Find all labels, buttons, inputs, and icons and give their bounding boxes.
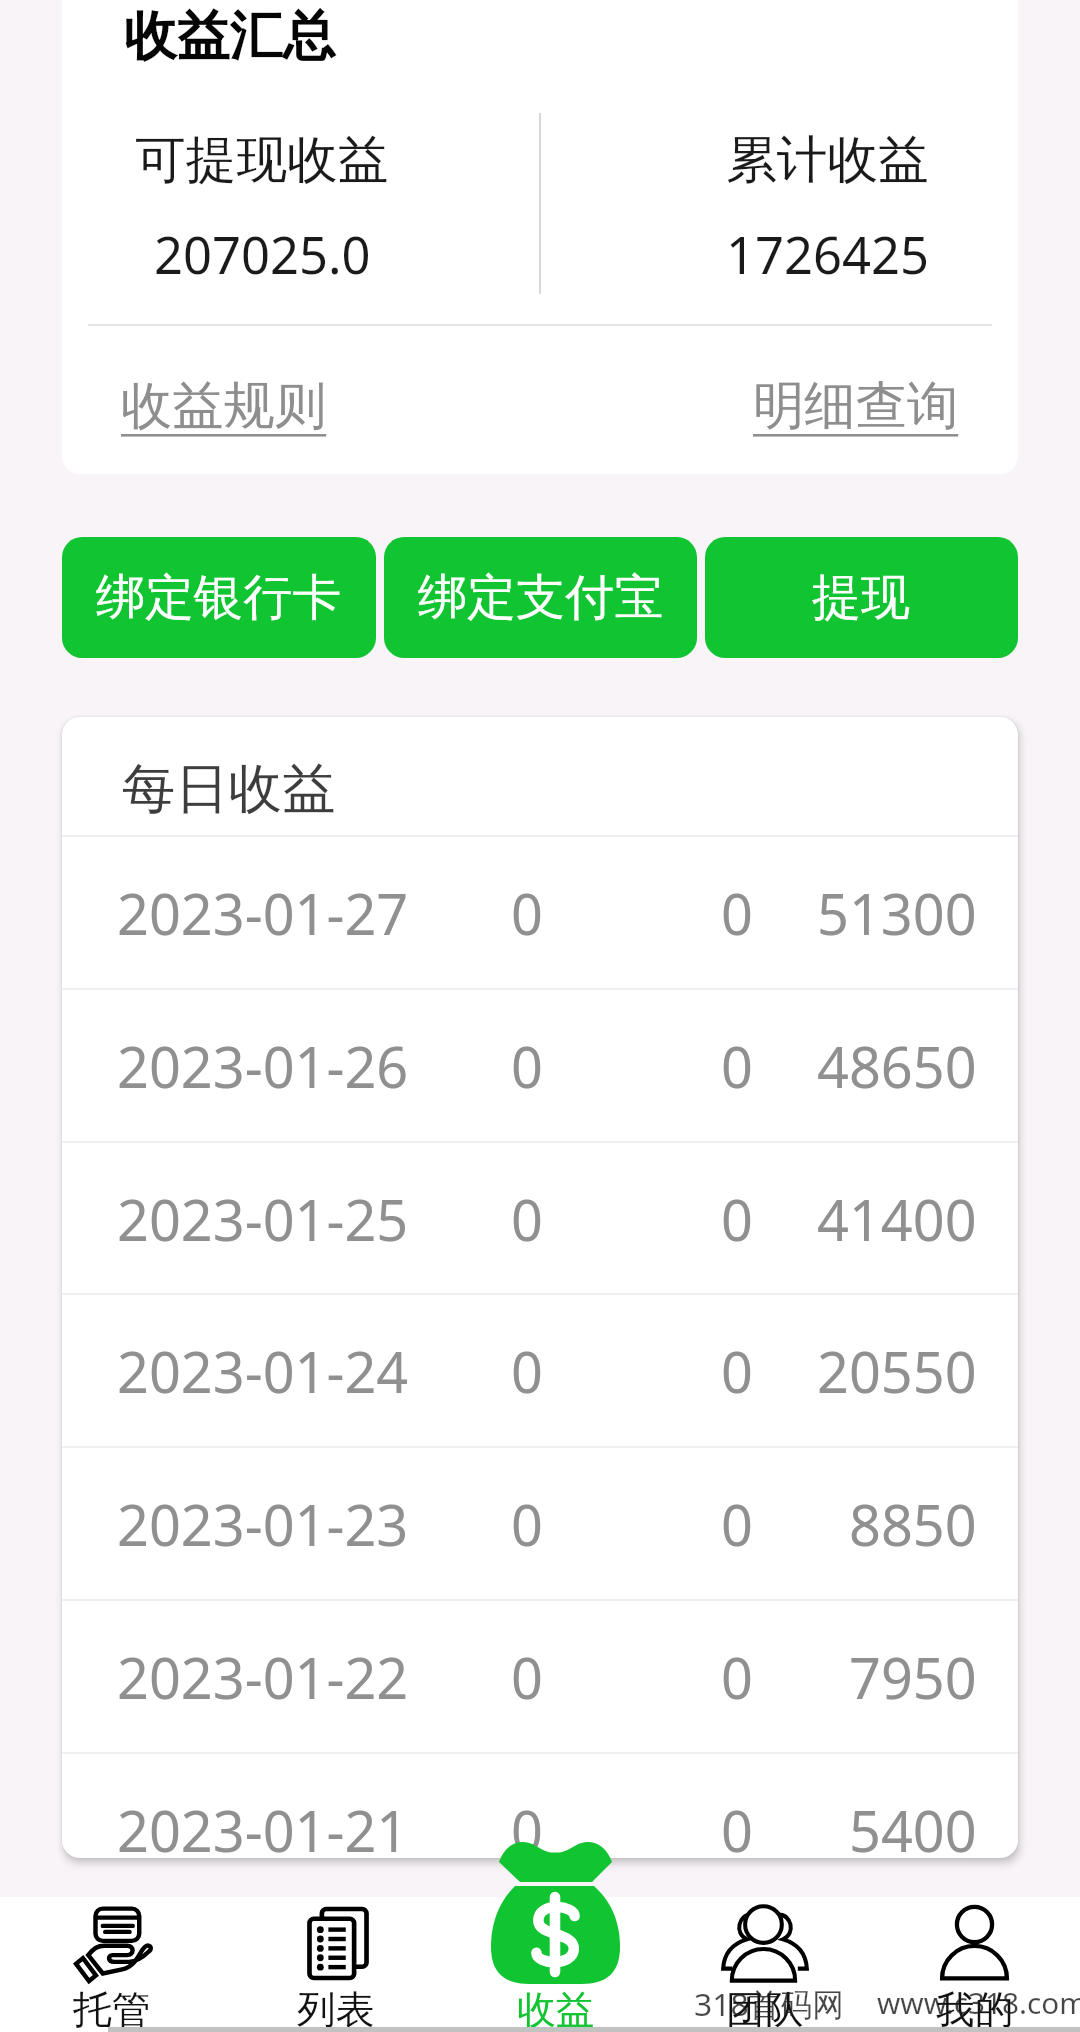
staticText: 0 xyxy=(721,1792,753,1858)
button[interactable]: 绑定银行卡 xyxy=(62,537,376,658)
button[interactable]: 2023-01-26 xyxy=(62,990,1018,1141)
button[interactable]: 绑定支付宝 xyxy=(384,537,697,658)
staticText: 收益 xyxy=(517,1986,595,2032)
staticText: 8850 xyxy=(849,1486,977,1562)
staticText: 2023-01-22 xyxy=(117,1639,409,1715)
button[interactable]: 我的 xyxy=(864,1897,1080,2032)
staticText: 团队 xyxy=(726,1986,804,2032)
staticText: 我的 xyxy=(936,1986,1014,2032)
staticText: 0 xyxy=(721,875,753,951)
staticText: 0 xyxy=(511,1639,543,1715)
staticText: 明细查询 xyxy=(753,374,959,439)
staticText: 207025.0 xyxy=(154,220,371,287)
staticText: 2023-01-27 xyxy=(117,875,409,951)
other: 团队 xyxy=(720,1906,810,1981)
button[interactable]: 团队 xyxy=(648,1897,864,2032)
staticText: 0 xyxy=(511,1792,543,1858)
button[interactable]: 收益规则 xyxy=(121,374,327,439)
button[interactable]: 明细查询 xyxy=(753,374,959,439)
staticText: 48650 xyxy=(817,1028,977,1104)
button[interactable]: 列表 xyxy=(216,1897,432,2032)
staticText: 2023-01-24 xyxy=(117,1333,409,1409)
button[interactable]: 托管 xyxy=(0,1897,216,2032)
staticText: 每日收益 xyxy=(122,756,336,823)
staticText: 收益汇总 xyxy=(124,3,336,70)
button[interactable]: 2023-01-25 xyxy=(62,1143,1018,1294)
staticText: 0 xyxy=(511,1028,543,1104)
button[interactable]: 2023-01-23 xyxy=(62,1448,1018,1599)
staticText: 7950 xyxy=(849,1639,977,1715)
staticText: 5400 xyxy=(849,1792,977,1858)
staticText: 2023-01-21 xyxy=(117,1792,409,1858)
staticText: 0 xyxy=(721,1486,753,1562)
other: 我的 xyxy=(940,1906,1009,1981)
staticText: 0 xyxy=(721,1181,753,1257)
staticText: 提现 xyxy=(812,567,911,629)
button[interactable]: 2023-01-22 xyxy=(62,1601,1018,1752)
staticText: 0 xyxy=(721,1333,753,1409)
staticText: 41400 xyxy=(817,1181,977,1257)
staticText: www.c318.com xyxy=(877,1982,1080,2022)
other: 托管 xyxy=(72,1906,153,1981)
staticText: 累计收益 xyxy=(726,128,929,192)
staticText: 0 xyxy=(511,1333,543,1409)
staticText: 2023-01-25 xyxy=(117,1181,409,1257)
staticText: 0 xyxy=(721,1028,753,1104)
staticText: 0 xyxy=(511,875,543,951)
staticText: 收益规则 xyxy=(121,374,327,439)
button[interactable]: 收益 xyxy=(432,1897,648,2032)
staticText: 20550 xyxy=(817,1333,977,1409)
staticText: 0 xyxy=(511,1181,543,1257)
staticText: 绑定银行卡 xyxy=(96,567,342,629)
staticText: 列表 xyxy=(297,1986,375,2032)
button[interactable]: 2023-01-21 xyxy=(62,1754,1018,1858)
button[interactable]: 2023-01-24 xyxy=(62,1295,1018,1446)
staticText: 2023-01-23 xyxy=(117,1486,409,1562)
staticText: 318首码网 xyxy=(694,1982,844,2025)
staticText: 1726425 xyxy=(726,220,929,287)
staticText: 0 xyxy=(721,1639,753,1715)
other: 收益 xyxy=(491,1841,620,1984)
staticText: 2023-01-26 xyxy=(117,1028,409,1104)
staticText: 可提现收益 xyxy=(135,128,389,192)
staticText: 51300 xyxy=(817,875,977,951)
button[interactable]: 2023-01-27 xyxy=(62,837,1018,988)
button[interactable]: 提现 xyxy=(705,537,1018,658)
staticText: 绑定支付宝 xyxy=(418,567,664,629)
staticText: 托管 xyxy=(73,1986,151,2032)
staticText: 0 xyxy=(511,1486,543,1562)
other: 列表 xyxy=(307,1906,369,1981)
